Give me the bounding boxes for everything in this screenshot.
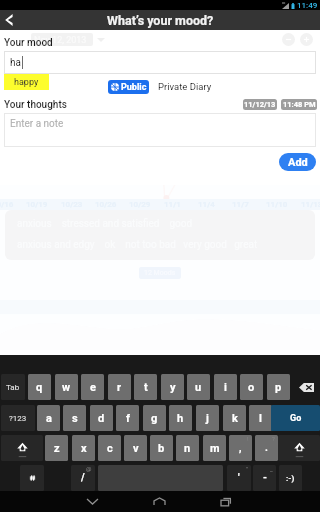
staticText: Your mood — [4, 37, 53, 49]
staticText: t — [144, 381, 148, 394]
staticText: . — [265, 442, 268, 454]
button[interactable]: Switch keyboard — [20, 465, 44, 491]
button[interactable]: _ — [253, 465, 276, 491]
staticText: f — [126, 412, 130, 425]
staticText: ? — [272, 435, 275, 442]
button[interactable]: j — [196, 405, 219, 431]
staticText: 11/4 — [198, 200, 215, 209]
staticText: r — [117, 381, 122, 394]
staticText: w — [62, 381, 71, 394]
button[interactable]: c — [98, 435, 121, 461]
staticText: 10/19 — [26, 200, 48, 209]
staticText: k — [232, 412, 238, 425]
staticText: 10/23 — [61, 200, 83, 209]
button[interactable]: @ — [71, 465, 95, 491]
button[interactable]: ha — [4, 51, 316, 74]
button[interactable]: w — [55, 374, 78, 400]
button[interactable]: " — [227, 465, 251, 491]
staticText: " — [246, 465, 248, 472]
button[interactable]: d — [90, 405, 113, 431]
button[interactable]: 11:48 PM — [281, 99, 317, 110]
staticText: i — [224, 381, 227, 394]
button[interactable]: y — [161, 374, 184, 400]
button[interactable]: ?123 — [1, 405, 35, 431]
staticText: 10/16 — [0, 200, 14, 209]
staticText: Public — [121, 82, 147, 93]
staticText: 11/10 — [266, 200, 288, 209]
button[interactable]: z — [45, 435, 68, 461]
button[interactable]: 11/12/13 — [243, 99, 277, 110]
staticText: u — [195, 381, 202, 394]
staticText: s — [72, 412, 78, 425]
staticText: Enter a note — [10, 118, 64, 130]
button[interactable]: q — [28, 374, 51, 400]
staticText: happy — [14, 77, 39, 88]
button[interactable]: i — [214, 374, 237, 400]
button[interactable]: Private Diary — [158, 81, 212, 92]
staticText: 11:49 — [297, 1, 318, 10]
staticText: @ — [86, 465, 92, 472]
staticText: g — [151, 412, 158, 425]
staticText: n — [184, 442, 191, 455]
button[interactable]: e — [81, 374, 104, 400]
button[interactable]: p — [267, 374, 290, 400]
button[interactable]: ! — [229, 435, 252, 461]
button[interactable]: happy — [4, 74, 49, 90]
staticText: 10/26 — [95, 200, 117, 209]
button[interactable]: n — [176, 435, 199, 461]
button[interactable]: h — [169, 405, 192, 431]
button[interactable]: Recent apps — [208, 491, 243, 512]
button[interactable]: t — [134, 374, 157, 400]
staticText: q — [36, 381, 43, 394]
button[interactable]: o — [240, 374, 263, 400]
staticText: :-) — [286, 474, 295, 483]
staticText: z — [54, 442, 60, 455]
staticText: ?123 — [9, 414, 27, 423]
button[interactable]: Add — [279, 153, 316, 171]
button[interactable]: :-) — [279, 465, 302, 491]
staticText: b — [158, 442, 165, 455]
staticText: ! — [247, 435, 249, 442]
button[interactable]: x — [72, 435, 95, 461]
staticText: j — [206, 412, 209, 425]
button[interactable]: Public — [108, 80, 149, 94]
button[interactable]: ? — [255, 435, 278, 461]
button[interactable]: Enter a note — [4, 113, 316, 147]
button[interactable]: m — [203, 435, 226, 461]
button[interactable]: k — [223, 405, 246, 431]
staticText: - — [263, 472, 267, 484]
staticText: h — [177, 412, 184, 425]
button[interactable]: g — [143, 405, 166, 431]
staticText: 10/29 — [129, 200, 151, 209]
button[interactable]: Go — [271, 405, 320, 431]
button[interactable]: a — [37, 405, 60, 431]
button[interactable]: f — [116, 405, 139, 431]
staticText: x — [81, 442, 87, 455]
button[interactable]: Shift — [278, 435, 320, 461]
staticText: o — [248, 381, 255, 394]
staticText: m — [210, 442, 220, 455]
staticText: 11/13 — [301, 200, 320, 209]
button[interactable]: Back — [0, 10, 17, 30]
button[interactable]: Shift — [1, 435, 43, 461]
button[interactable]: Tab — [1, 374, 25, 400]
button[interactable]: b — [150, 435, 173, 461]
staticText: y — [170, 381, 176, 394]
button[interactable]: Home — [142, 491, 177, 512]
staticText: / — [81, 472, 85, 484]
button[interactable]: Backspace — [293, 374, 320, 400]
button[interactable]: s — [63, 405, 86, 431]
button[interactable]: Hide keyboard — [75, 491, 110, 512]
button[interactable]: l — [249, 405, 272, 431]
staticText: What’s your mood? — [107, 13, 214, 28]
button[interactable]: r — [108, 374, 131, 400]
button[interactable]: u — [187, 374, 210, 400]
staticText: ha — [10, 57, 21, 69]
staticText: _ — [270, 465, 273, 472]
button[interactable]: v — [124, 435, 147, 461]
staticText: p — [275, 381, 282, 394]
